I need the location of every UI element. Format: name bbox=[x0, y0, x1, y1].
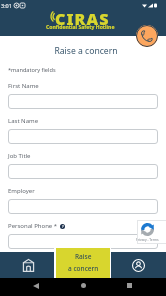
staticText: First Name bbox=[8, 82, 39, 90]
button[interactable]: Raise bbox=[56, 248, 110, 278]
button[interactable]: Account bbox=[111, 252, 166, 278]
button[interactable]: Home bbox=[0, 252, 56, 278]
staticText: a concern bbox=[68, 264, 99, 273]
button[interactable] bbox=[8, 164, 158, 179]
staticText: Privacy - Terms bbox=[136, 238, 159, 242]
staticText: Raise a concern bbox=[6, 45, 166, 57]
staticText: Employer bbox=[8, 187, 35, 195]
button[interactable]: Help bbox=[60, 224, 65, 229]
staticText: Confidential Safety Hotline bbox=[46, 24, 115, 31]
button[interactable]: Back bbox=[33, 283, 39, 289]
button[interactable]: Home bbox=[81, 283, 86, 288]
staticText: Raise bbox=[75, 252, 92, 261]
staticText: CIRAS bbox=[55, 8, 110, 30]
button[interactable] bbox=[8, 129, 158, 144]
button[interactable]: reCAPTCHA privacy and terms bbox=[137, 220, 166, 244]
button[interactable] bbox=[8, 234, 158, 249]
staticText: Last Name bbox=[8, 117, 39, 125]
staticText: *mandatory fields bbox=[8, 66, 56, 74]
staticText: Personal Phone * bbox=[8, 222, 58, 230]
button[interactable]: Call the hotline bbox=[136, 25, 158, 47]
button[interactable] bbox=[8, 94, 158, 109]
button[interactable] bbox=[8, 199, 158, 214]
staticText: 3:01 bbox=[1, 2, 12, 9]
staticText: Job Title bbox=[8, 152, 31, 160]
staticText: ? bbox=[62, 224, 64, 229]
